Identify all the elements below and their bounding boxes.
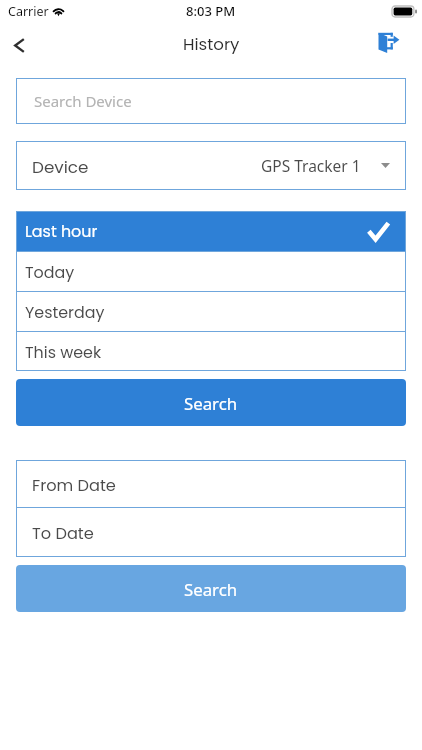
button[interactable]: Yesterday [16,292,406,331]
staticText: 8:03 PM [186,2,236,20]
staticText: GPS Tracker 1 [261,155,361,176]
button[interactable]: Logout [372,26,406,60]
staticText: Yesterday [25,301,105,323]
button[interactable]: Search [16,379,406,426]
staticText: Today [25,261,75,283]
button[interactable]: Device [16,141,406,190]
staticText: This week [25,341,102,363]
button[interactable]: To Date [16,508,406,555]
staticText: Search [184,392,238,415]
button[interactable]: Back [2,28,36,62]
button[interactable]: This week [16,332,406,371]
button[interactable]: Last hour [16,211,406,251]
button[interactable]: Search Device [16,78,406,124]
staticText: History [183,33,240,56]
staticText: To Date [32,522,94,545]
button[interactable]: Today [16,252,406,291]
staticText: Device [32,155,89,179]
staticText: From Date [32,474,116,497]
staticText: Last hour [25,220,98,242]
staticText: Search Device [34,91,132,111]
button[interactable]: From Date [16,460,406,507]
staticText: Search [184,578,238,601]
button[interactable]: Search [16,565,406,612]
staticText: Carrier [8,3,49,20]
